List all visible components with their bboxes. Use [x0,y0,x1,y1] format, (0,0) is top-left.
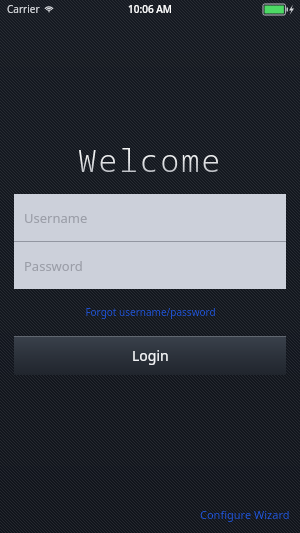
staticText: Forgot username/password [85,305,216,319]
button[interactable]: Login [14,336,286,375]
button[interactable]: Configure Wizard [198,505,292,524]
staticText: Carrier [7,2,40,16]
staticText: 10:06 AM [128,2,172,16]
button[interactable]: Forgot username/password [81,303,220,321]
staticText: Welcome [78,139,223,181]
staticText: Login [132,346,169,365]
staticText: Username [24,209,88,227]
button[interactable]: Username [14,194,286,241]
staticText: Password [24,257,83,275]
staticText: Configure Wizard [200,507,290,522]
button[interactable]: Password [14,242,286,289]
